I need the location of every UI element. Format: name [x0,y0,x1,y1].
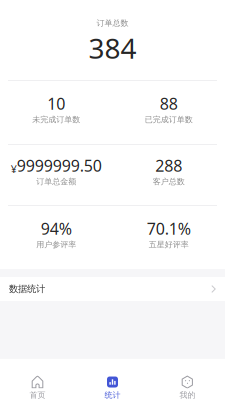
staticText: 未完成订单数 [32,115,80,124]
staticText: ¥ [11,162,17,176]
staticText: 用户参评率 [36,240,76,249]
button[interactable]: 我的 [150,358,225,400]
staticText: 客户总数 [153,177,185,186]
button[interactable]: 数据统计 [0,277,225,301]
staticText: 首页 [29,390,45,400]
staticText: 订单总金额 [36,177,76,186]
staticText: 已完成订单数 [145,115,193,124]
button[interactable]: 统计 [75,358,150,400]
staticText: 订单总数 [96,18,128,28]
staticText: 我的 [179,390,195,400]
staticText: 88 [160,93,178,114]
button[interactable]: 首页 [0,358,75,400]
staticText: 384 [88,29,136,67]
staticText: 70.1% [147,218,191,239]
staticText: 9999999.50 [17,155,102,176]
staticText: 数据统计 [9,283,45,295]
staticText: 10 [47,93,65,114]
staticText: 统计 [104,390,120,400]
staticText: 五星好评率 [149,240,189,249]
staticText: 288 [155,155,182,176]
staticText: 94% [41,218,72,239]
